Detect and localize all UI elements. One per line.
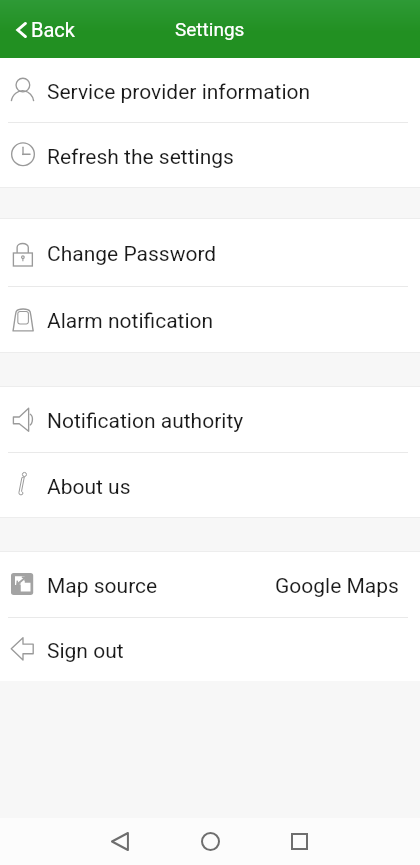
staticText: Google Maps	[275, 574, 399, 599]
staticText: Service provider information	[47, 80, 311, 105]
staticText: Change Password	[47, 242, 217, 267]
button[interactable]: Refresh the settings	[0, 123, 420, 187]
staticText: Refresh the settings	[47, 145, 234, 170]
button[interactable]: Back	[4, 10, 87, 49]
button[interactable]: Back	[89, 818, 150, 865]
button[interactable]: About us	[0, 453, 420, 517]
button[interactable]: Change Password	[0, 219, 420, 286]
button[interactable]: Sign out	[0, 618, 420, 681]
staticText: Map source	[47, 574, 158, 599]
button[interactable]: Map source	[0, 552, 420, 617]
button[interactable]: Home	[180, 818, 241, 865]
staticText: About us	[47, 475, 131, 500]
staticText: Settings	[175, 18, 245, 40]
button[interactable]: Notification authority	[0, 387, 420, 452]
staticText: Notification authority	[47, 409, 244, 434]
staticText: Sign out	[47, 639, 124, 664]
button[interactable]: Alarm notification	[0, 287, 420, 352]
staticText: Back	[31, 18, 75, 41]
staticText: Alarm notification	[47, 309, 214, 334]
button[interactable]: Service provider information	[0, 58, 420, 122]
button[interactable]: Recents	[269, 818, 330, 865]
